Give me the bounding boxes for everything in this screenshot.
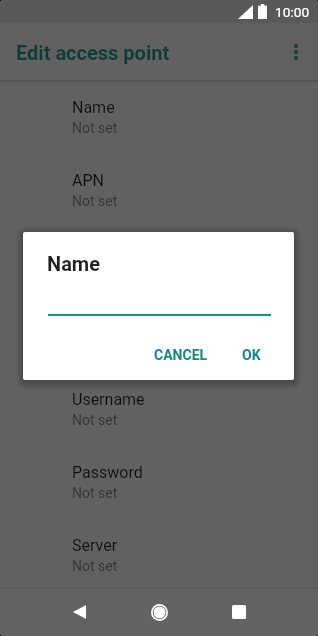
staticText: Username: [72, 390, 145, 409]
button[interactable]: Proxy: [0, 226, 318, 299]
button[interactable]: APN: [0, 153, 318, 226]
button[interactable]: Name: [0, 80, 318, 153]
button[interactable]: More options: [276, 32, 316, 72]
button[interactable]: CANCEL: [146, 340, 216, 370]
staticText: Not set: [72, 193, 118, 209]
staticText: 10:00: [275, 4, 310, 20]
staticText: Not set: [72, 485, 118, 501]
staticText: Server: [72, 536, 118, 555]
button[interactable]: Back: [62, 588, 97, 635]
staticText: Not set: [72, 120, 118, 136]
button[interactable]: Recent apps: [221, 588, 256, 635]
staticText: Proxy: [72, 244, 112, 263]
staticText: APN: [72, 171, 104, 190]
button[interactable]: Home: [142, 589, 177, 636]
staticText: Not set: [72, 266, 118, 282]
staticText: CANCEL: [154, 347, 208, 363]
staticText: Edit access point: [16, 41, 170, 64]
staticText: Not set: [72, 412, 118, 428]
button[interactable]: OK: [234, 340, 269, 370]
button[interactable]: Server: [0, 518, 318, 591]
button[interactable]: Port: [0, 299, 318, 372]
staticText: Name: [72, 98, 115, 117]
button[interactable]: Password: [0, 445, 318, 518]
staticText: Not set: [72, 558, 118, 574]
staticText: Password: [72, 463, 143, 482]
staticText: OK: [242, 347, 261, 363]
button[interactable]: Username: [0, 372, 318, 445]
staticText: Name: [47, 252, 100, 275]
